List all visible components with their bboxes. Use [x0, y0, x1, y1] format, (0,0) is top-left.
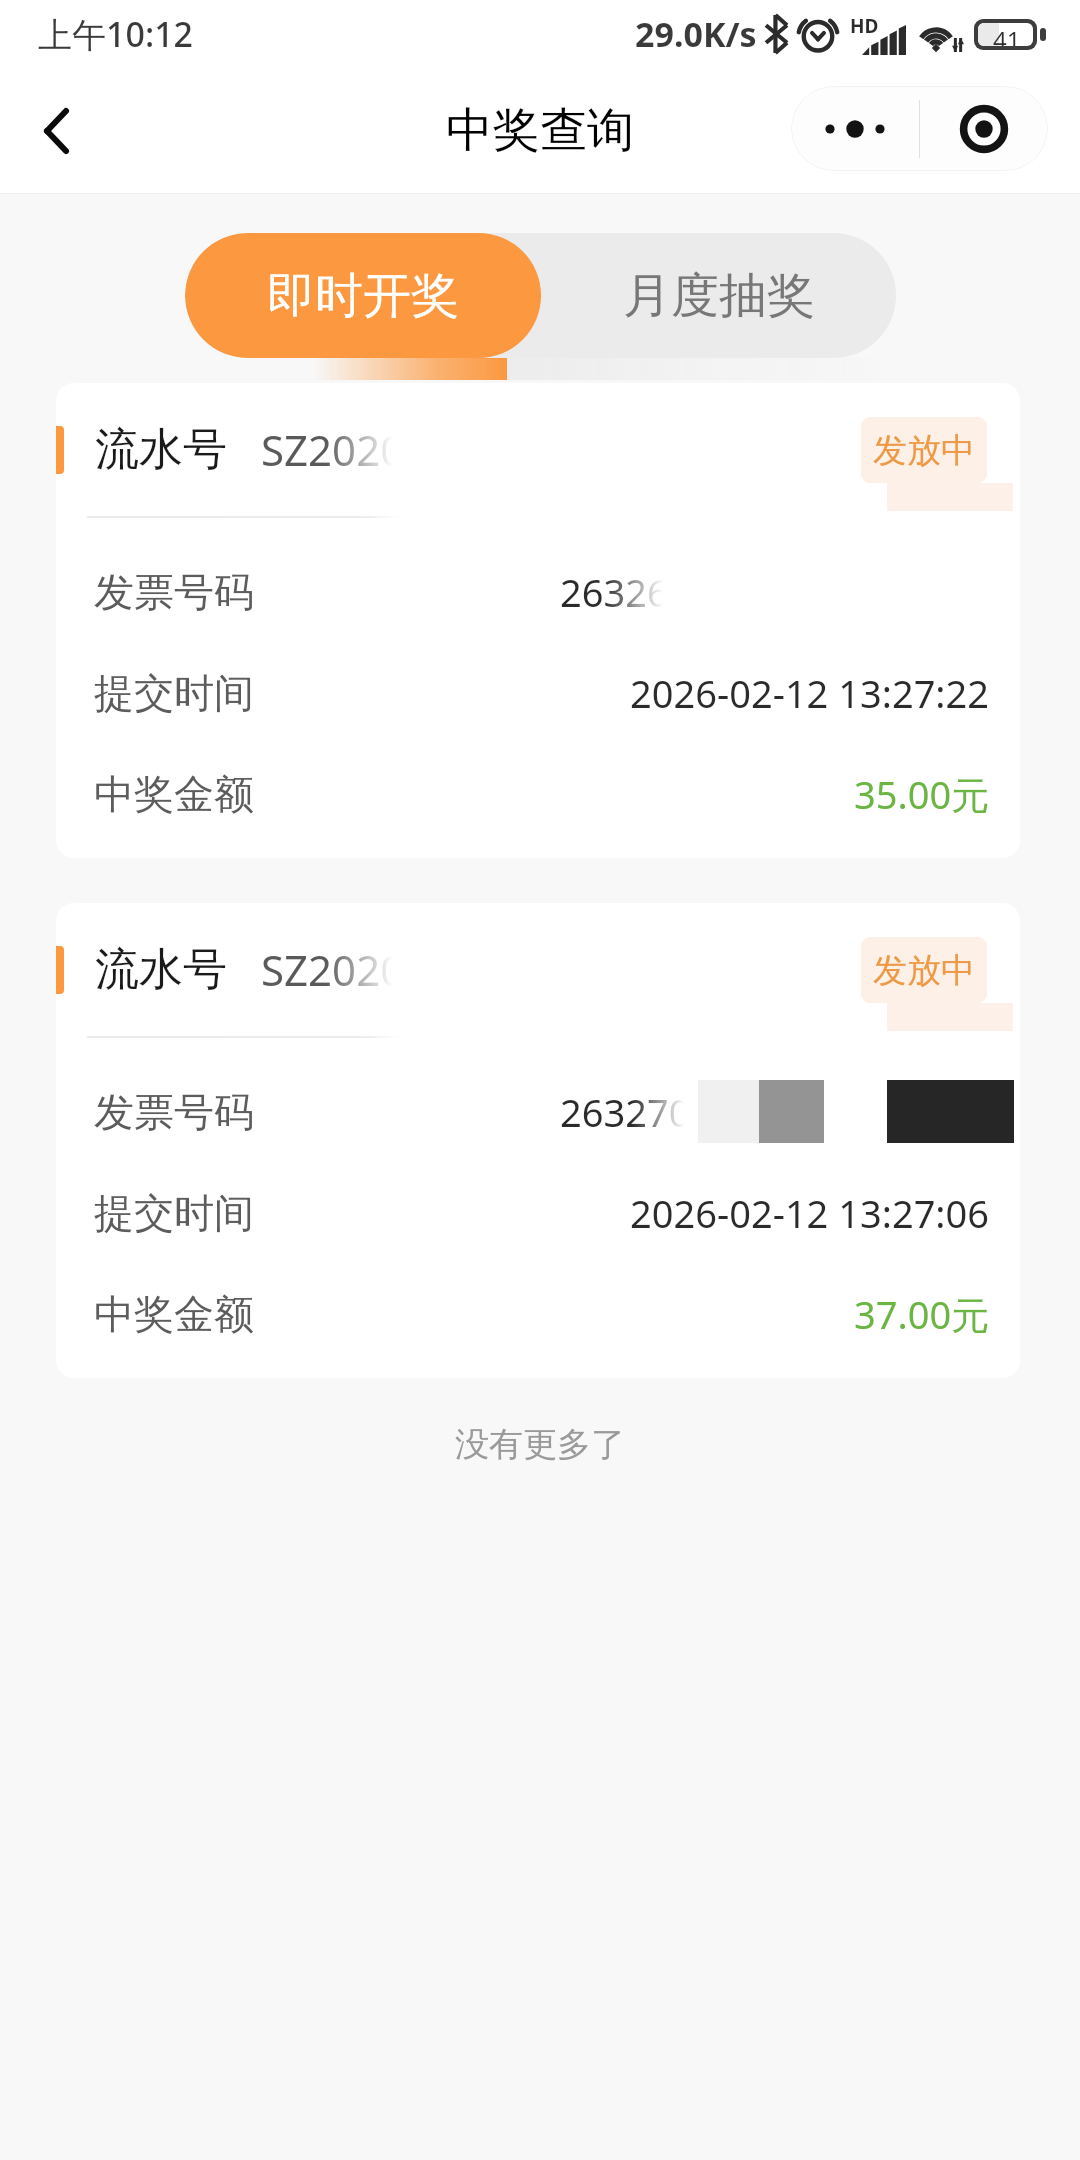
staticText: 流水号 [95, 942, 227, 997]
staticText: 26326 [560, 566, 669, 618]
staticText: 41 [993, 23, 1021, 46]
staticText: SZ2020 [261, 941, 405, 998]
staticText: 上午10:12 [38, 11, 194, 57]
button[interactable]: Back [20, 95, 92, 167]
button[interactable]: 流水号 [56, 903, 1020, 1378]
button[interactable]: 即时开奖 [185, 233, 541, 358]
staticText: 263270 [560, 1086, 691, 1138]
staticText: 发票号码 [94, 567, 254, 617]
staticText: 月度抽奖 [623, 266, 815, 326]
staticText: 29.0K/s [635, 11, 757, 57]
staticText: 2026-02-12 13:27:06 [630, 1187, 990, 1239]
staticText: 37.00元 [854, 1288, 990, 1340]
button[interactable]: 月度抽奖 [541, 233, 896, 358]
button[interactable]: Menu [791, 86, 1048, 171]
staticText: 即时开奖 [267, 266, 459, 326]
staticText: 中奖查询 [446, 101, 634, 160]
staticText: 发放中 [873, 429, 975, 472]
staticText: 没有更多了 [0, 1423, 1080, 1466]
staticText: 提交时间 [94, 1188, 254, 1238]
staticText: 发票号码 [94, 1087, 254, 1137]
staticText: HD [850, 13, 879, 39]
button[interactable]: 流水号 [56, 383, 1020, 858]
staticText: 提交时间 [94, 668, 254, 718]
staticText: SZ2020 [261, 421, 405, 478]
staticText: 中奖金额 [94, 769, 254, 819]
staticText: 2026-02-12 13:27:22 [630, 667, 990, 719]
staticText: 流水号 [95, 422, 227, 477]
staticText: 发放中 [873, 949, 975, 992]
staticText: 35.00元 [854, 768, 990, 820]
staticText: 中奖金额 [94, 1289, 254, 1339]
